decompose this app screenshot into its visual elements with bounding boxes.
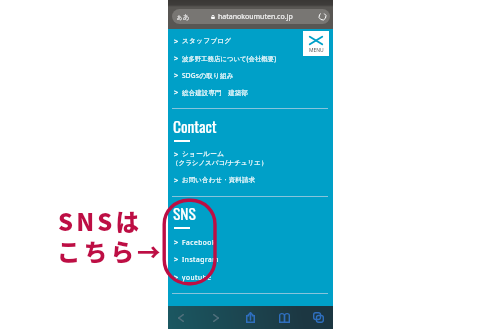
staticText: Facebook: [182, 238, 216, 247]
button[interactable]: >: [174, 175, 326, 185]
button[interactable]: >: [174, 254, 326, 264]
staticText: >: [174, 70, 179, 80]
button[interactable]: >: [174, 272, 326, 282]
staticText: MENU: [309, 47, 324, 54]
staticText: SDGsの取り組み: [182, 71, 234, 80]
button[interactable]: >: [174, 70, 326, 80]
button[interactable]: >: [174, 87, 326, 97]
button[interactable]: Share: [237, 306, 263, 329]
staticText: こちら→: [57, 234, 164, 268]
button[interactable]: ぁあ: [172, 9, 330, 24]
button[interactable]: >: [174, 237, 326, 247]
staticText: youtube: [182, 273, 212, 282]
button[interactable]: >: [174, 36, 326, 46]
staticText: >: [174, 175, 179, 185]
button[interactable]: >: [174, 53, 326, 63]
staticText: >: [174, 36, 179, 46]
staticText: Instagram: [182, 255, 220, 264]
staticText: >: [174, 254, 179, 264]
staticText: >: [174, 53, 179, 63]
staticText: 総合建設専門 建築部: [182, 88, 248, 97]
button[interactable]: Forward: [203, 306, 229, 329]
button[interactable]: Tabs: [305, 306, 331, 329]
button[interactable]: >: [174, 149, 326, 159]
button[interactable]: Bookmarks: [271, 306, 297, 329]
staticText: スタッフブログ: [182, 37, 232, 45]
staticText: SNS: [173, 202, 196, 225]
staticText: >: [174, 149, 179, 159]
staticText: SNSは: [58, 204, 143, 238]
staticText: 波多野工務店について(会社概要): [182, 54, 277, 63]
staticText: ショールーム: [182, 150, 225, 158]
staticText: お問い合わせ・資料請求: [182, 176, 256, 184]
staticText: ぁあ: [176, 13, 190, 21]
button[interactable]: Back: [168, 306, 194, 329]
staticText: Contact: [173, 115, 217, 138]
staticText: （クラシノスパコ/ナチュリエ）: [172, 158, 268, 167]
button[interactable]: Menu: [303, 31, 329, 56]
staticText: >: [174, 237, 179, 247]
staticText: hatanokoumuten.co.jp: [218, 12, 293, 22]
staticText: >: [174, 87, 179, 97]
staticText: >: [174, 272, 179, 282]
